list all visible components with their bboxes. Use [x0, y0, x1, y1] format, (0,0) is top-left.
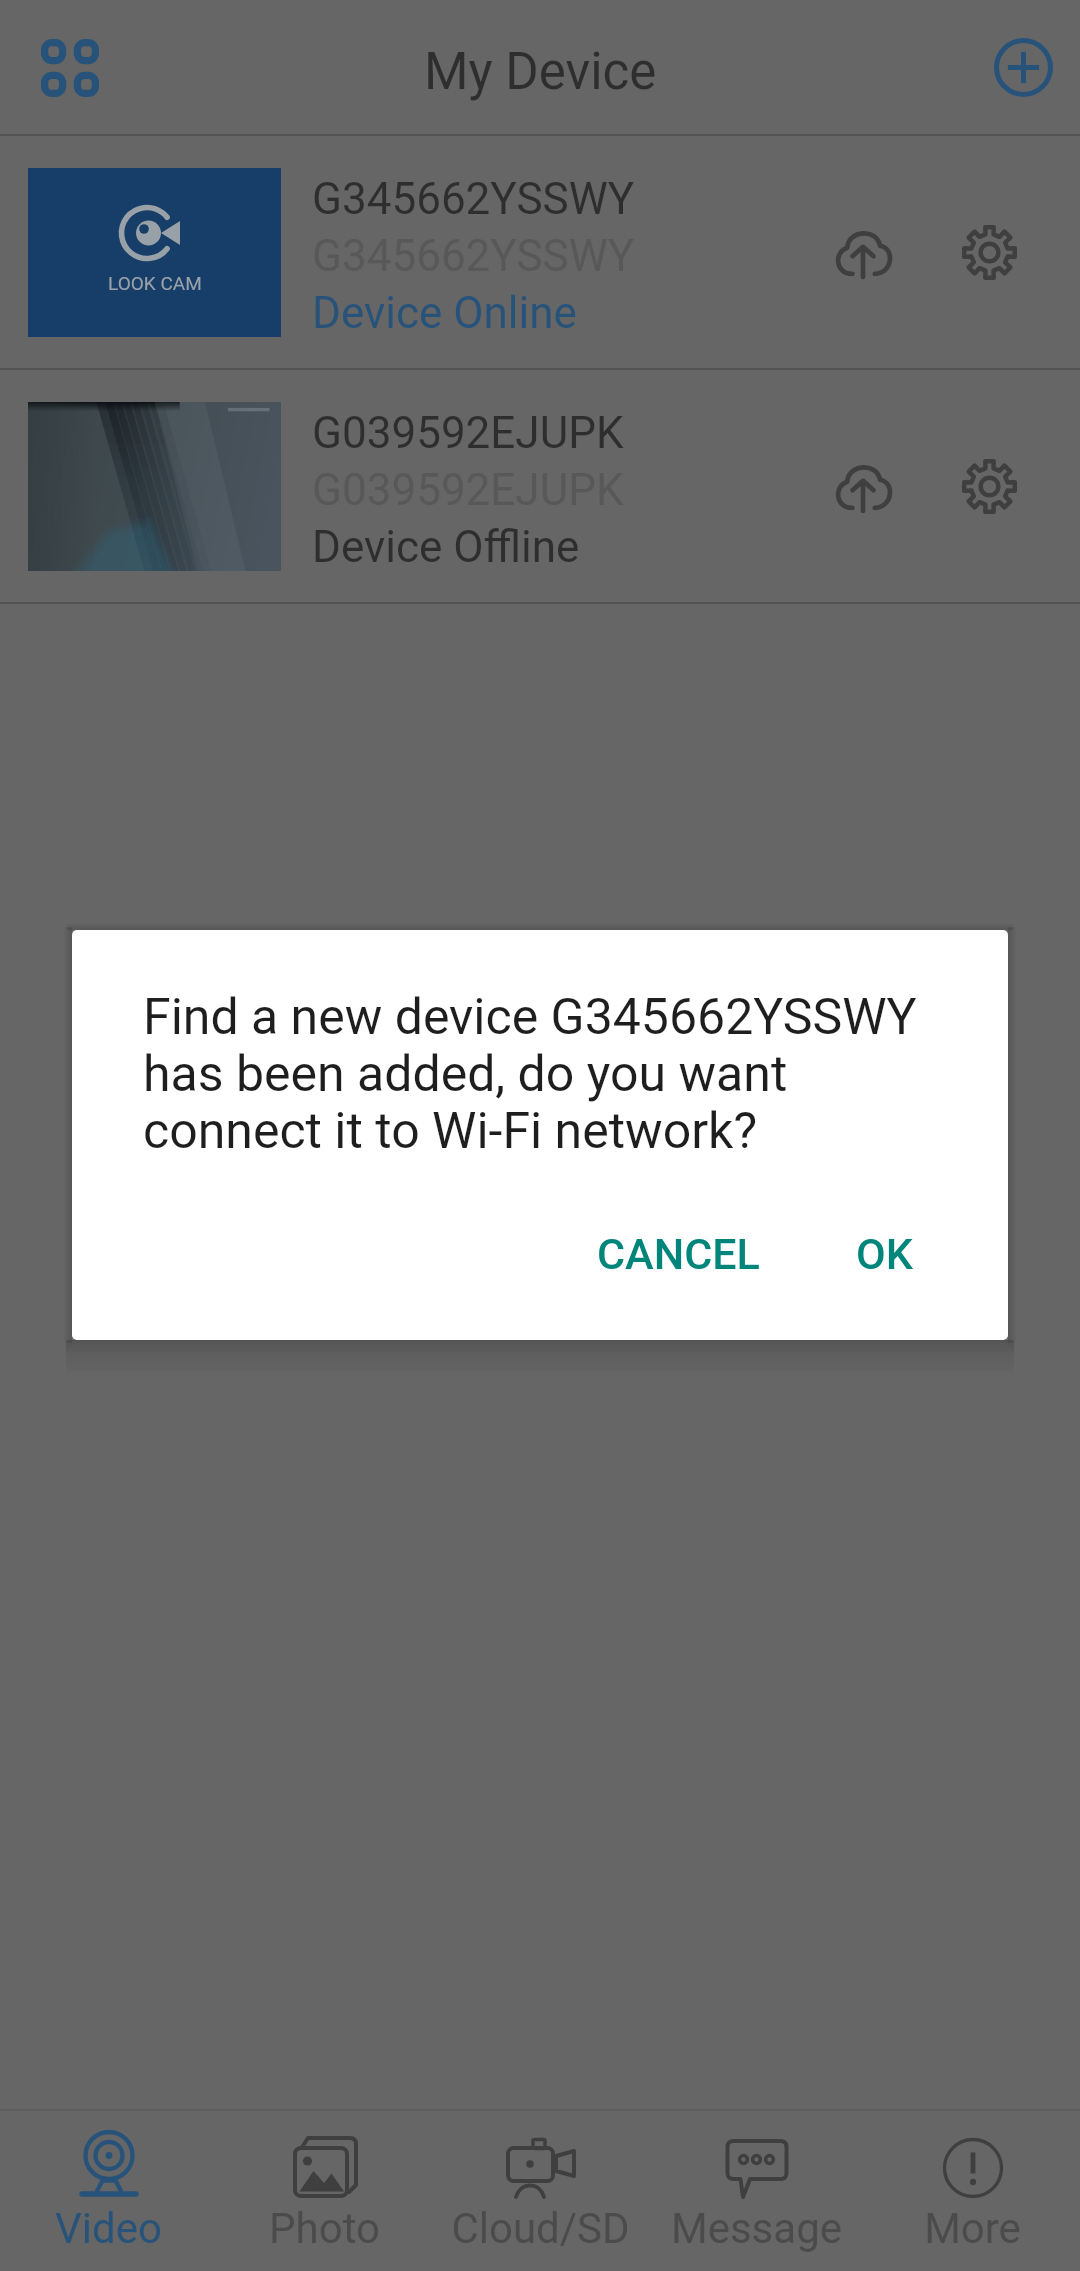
button[interactable]: Grid view — [16, 14, 124, 122]
button[interactable]: Message — [648, 2111, 864, 2271]
staticText: G345662YSSWY — [312, 230, 635, 282]
staticText: G345662YSSWY — [312, 173, 635, 225]
button[interactable]: More — [864, 2111, 1080, 2271]
button[interactable]: OK — [830, 1229, 939, 1319]
staticText: Find a new device G345662YSSWY has been … — [143, 988, 917, 1160]
staticText: Cloud/SD — [451, 2204, 630, 2253]
staticText: CANCEL — [597, 1229, 760, 1279]
staticText: Photo — [269, 2204, 380, 2253]
button[interactable]: Upload to cloud — [800, 189, 926, 315]
button[interactable]: Device settings — [926, 423, 1052, 549]
staticText: Device Offline — [312, 521, 580, 573]
button[interactable]: LOOK CAM — [0, 136, 1080, 368]
button[interactable]: G039592EJUPK — [0, 370, 1080, 602]
button[interactable]: Upload to cloud — [800, 423, 926, 549]
staticText: G039592EJUPK — [312, 464, 624, 516]
button[interactable]: Video — [0, 2111, 216, 2271]
staticText: Message — [671, 2204, 842, 2253]
staticText: My Device — [424, 42, 657, 102]
button[interactable]: Cloud/SD — [432, 2111, 648, 2271]
staticText: OK — [856, 1229, 913, 1279]
button[interactable]: CANCEL — [571, 1229, 786, 1319]
staticText: More — [924, 2204, 1021, 2253]
staticText: G039592EJUPK — [312, 407, 624, 459]
staticText: Video — [55, 2204, 162, 2253]
button[interactable]: Add device — [969, 13, 1077, 121]
button[interactable]: Device settings — [926, 189, 1052, 315]
staticText: Device Online — [312, 287, 577, 339]
staticText: LOOK CAM — [108, 272, 202, 294]
button[interactable]: Photo — [216, 2111, 432, 2271]
